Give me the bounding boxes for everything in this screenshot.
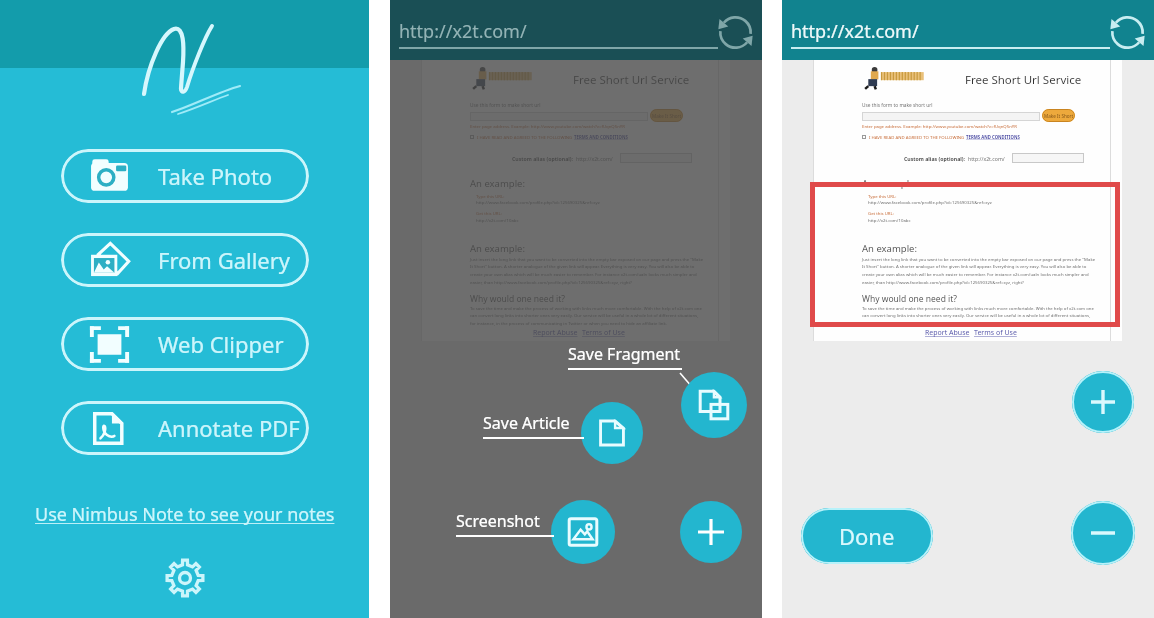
button[interactable]: Screenshot	[551, 500, 615, 564]
staticText: Custom alias (optional):	[512, 155, 574, 162]
button[interactable]: From Gallery	[61, 233, 309, 287]
staticText: Enter page address. Example: http://www.…	[862, 123, 1017, 129]
button[interactable]: Refresh	[1107, 12, 1148, 53]
staticText: Type this URL:	[476, 193, 505, 199]
staticText: Get this URL:	[476, 210, 502, 216]
staticText: http://www.facebook.com/profile.php?id=1…	[868, 199, 992, 205]
staticText: Free Short Url Service	[965, 72, 1082, 88]
button[interactable]: Screenshot	[456, 510, 554, 537]
button[interactable]: Annotate PDF	[61, 401, 309, 455]
staticText: Enter page address. Example: http://www.…	[470, 123, 625, 129]
staticText: Done	[839, 521, 895, 551]
staticText: Web Clipper	[158, 329, 284, 359]
button[interactable]: Add	[680, 501, 742, 563]
button[interactable]: Zoom out	[1071, 501, 1135, 565]
staticText: http://www.facebook.com/profile.php?id=1…	[476, 199, 600, 205]
staticText: http://x2t.com/	[968, 155, 1005, 162]
button[interactable]: Zoom in	[1072, 371, 1134, 433]
button[interactable]: Save Fragment	[568, 343, 682, 370]
staticText: Why would one need it?	[862, 293, 958, 305]
staticText: Save Article	[483, 412, 570, 434]
staticText: Make It Short	[1044, 113, 1074, 119]
staticText: I HAVE READ AND AGREED TO THE FOLLOWING	[869, 134, 966, 140]
button[interactable]: Save Article	[581, 402, 643, 464]
staticText: An example:	[862, 177, 918, 190]
staticText: Take Photo	[158, 161, 273, 191]
staticText: Report Abuse	[533, 328, 578, 338]
staticText: http://x2t.com/	[399, 19, 527, 44]
staticText: Just insert the long link that you want …	[862, 256, 1096, 285]
button[interactable]: Take Photo	[61, 149, 309, 203]
staticText: Terms of Use	[974, 328, 1017, 338]
staticText: An example:	[470, 242, 526, 255]
staticText: Report Abuse	[925, 328, 970, 338]
button[interactable]: Use Nimbus Note to see your notes	[35, 502, 335, 527]
button[interactable]: Save Article	[483, 412, 584, 439]
staticText: Type this URL:	[868, 193, 897, 199]
staticText: Terms of Use	[582, 328, 625, 338]
button[interactable]: Refresh	[715, 12, 756, 53]
staticText: An example:	[470, 177, 526, 190]
staticText: http://x2t.com/10abc	[868, 217, 911, 223]
staticText: TERMS AND CONDITIONS	[574, 134, 628, 140]
staticText: I HAVE READ AND AGREED TO THE FOLLOWING	[477, 134, 574, 140]
button[interactable]: Done	[801, 508, 933, 564]
staticText: Make It Short	[652, 113, 682, 119]
staticText: http://x2t.com/10abc	[476, 217, 519, 223]
staticText: Why would one need it?	[470, 293, 566, 305]
button[interactable]: Settings	[163, 556, 207, 600]
staticText: http://x2t.com/	[791, 19, 919, 44]
staticText: Use this form to make short url	[470, 102, 541, 109]
button[interactable]: Web Clipper	[61, 317, 309, 371]
staticText: From Gallery	[158, 245, 291, 275]
staticText: http://x2t.com/	[576, 155, 613, 162]
staticText: Free Short Url Service	[573, 72, 690, 88]
staticText: Custom alias (optional):	[904, 155, 966, 162]
staticText: Get this URL:	[868, 210, 894, 216]
staticText: An example:	[862, 242, 918, 255]
staticText: Screenshot	[456, 510, 540, 532]
button[interactable]: Save Fragment	[681, 372, 747, 438]
staticText: To save the time and make the process of…	[470, 305, 704, 326]
staticText: Use this form to make short url	[862, 102, 933, 109]
staticText: Annotate PDF	[158, 413, 300, 443]
staticText: Just insert the long link that you want …	[470, 256, 704, 285]
staticText: Save Fragment	[568, 343, 681, 365]
staticText: To save the time and make the process of…	[862, 305, 1096, 326]
staticText: TERMS AND CONDITIONS	[966, 134, 1020, 140]
